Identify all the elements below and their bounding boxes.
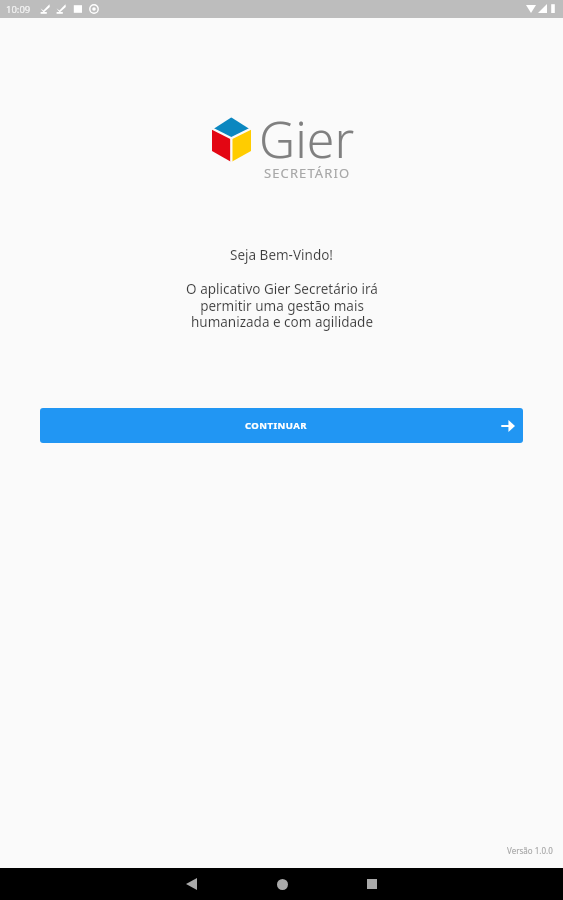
button[interactable]: Back bbox=[171, 868, 211, 900]
staticText: 10:09 bbox=[6, 3, 31, 16]
staticText: CONTINUAR bbox=[245, 419, 307, 432]
button[interactable]: Home bbox=[262, 868, 302, 900]
staticText: SECRETÁRIO bbox=[264, 164, 351, 182]
staticText: Seja Bem-Vindo! bbox=[230, 246, 333, 264]
staticText: Gier bbox=[259, 105, 355, 173]
staticText: O aplicativo Gier Secretário irá permiti… bbox=[186, 280, 378, 331]
button[interactable]: Recent apps bbox=[352, 868, 392, 900]
button[interactable]: CONTINUAR bbox=[40, 408, 523, 443]
staticText: Versão 1.0.0 bbox=[507, 845, 553, 856]
